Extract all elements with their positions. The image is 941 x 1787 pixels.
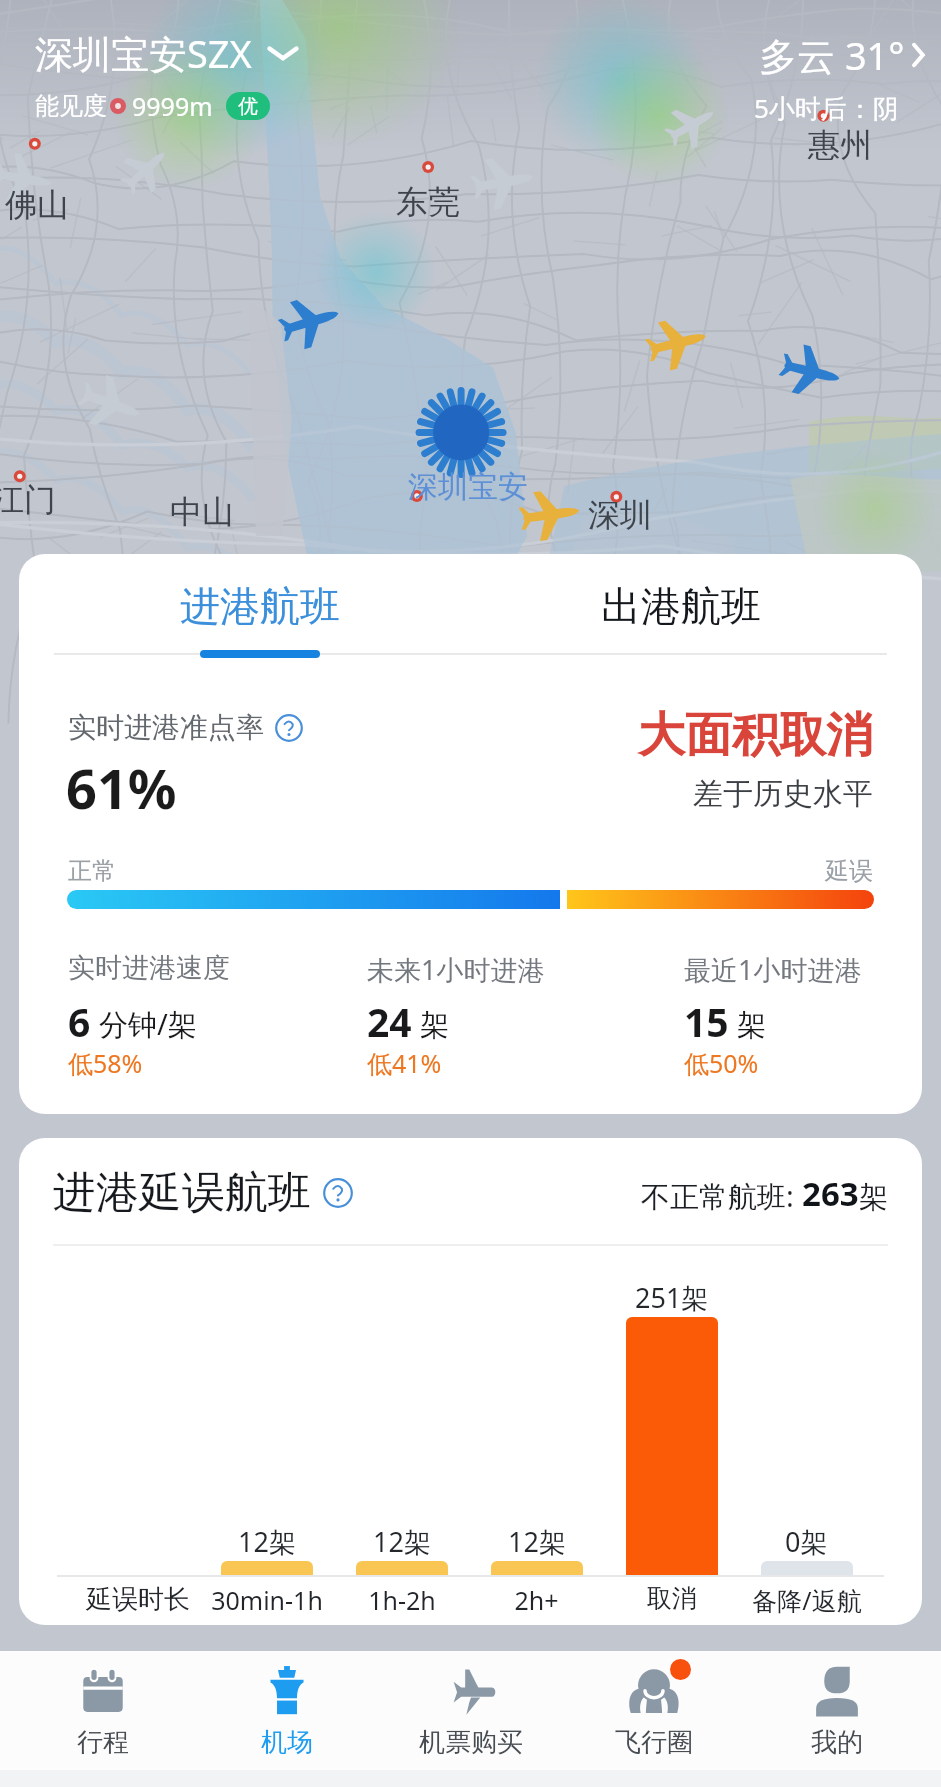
staticText: 出港航班: [601, 581, 761, 631]
staticText: 架: [859, 1179, 888, 1216]
staticText: 251架: [635, 1279, 709, 1316]
button[interactable]: 出港航班: [470, 554, 891, 658]
staticText: 正常: [68, 856, 116, 886]
staticText: 备降/返航: [752, 1583, 862, 1617]
button[interactable]: 飞行圈: [562, 1651, 745, 1759]
button[interactable]: 我的: [745, 1651, 928, 1759]
staticText: 深圳宝安SZX: [35, 27, 252, 79]
staticText: 优: [238, 94, 258, 119]
staticText: 5小时后：阴: [754, 90, 899, 126]
staticText: 15: [684, 995, 729, 1048]
staticText: 未来1小时进港: [367, 951, 545, 988]
button[interactable]: 进港航班: [50, 554, 470, 658]
staticText: 实时进港准点率: [68, 710, 264, 745]
staticText: 多云 31°: [759, 29, 905, 81]
staticText: 架: [420, 1007, 449, 1044]
staticText: 263: [802, 1171, 859, 1216]
button[interactable]: 机场: [195, 1651, 379, 1759]
staticText: 低50%: [684, 1046, 759, 1080]
staticText: 江门: [0, 480, 56, 520]
staticText: 0架: [785, 1523, 828, 1560]
staticText: 进港航班: [180, 581, 340, 631]
button[interactable]: 行程: [11, 1651, 195, 1759]
staticText: 61%: [66, 751, 177, 825]
staticText: 不正常航班:: [641, 1176, 802, 1216]
button[interactable]: 深圳宝安SZX: [35, 27, 299, 123]
staticText: 深圳宝安: [408, 468, 528, 506]
staticText: 低41%: [367, 1046, 442, 1080]
staticText: 9999m: [132, 89, 213, 123]
staticText: 2h+: [514, 1583, 559, 1617]
staticText: 东莞: [396, 182, 460, 222]
staticText: 6: [68, 995, 91, 1048]
staticText: 飞行圈: [615, 1726, 693, 1759]
staticText: 中山: [170, 492, 234, 532]
staticText: 取消: [647, 1583, 697, 1614]
staticText: 大面积取消: [638, 706, 873, 765]
staticText: 我的: [811, 1726, 863, 1759]
button[interactable]: 多云 31°: [759, 29, 926, 126]
staticText: 12架: [508, 1523, 566, 1560]
staticText: 12架: [238, 1523, 296, 1560]
staticText: 进港延误航班: [53, 1166, 311, 1220]
staticText: 24: [367, 995, 412, 1048]
staticText: 惠州: [808, 125, 872, 165]
staticText: 12架: [373, 1523, 431, 1560]
staticText: 佛山: [5, 185, 69, 225]
staticText: 深圳: [588, 495, 652, 535]
staticText: 行程: [77, 1726, 129, 1759]
staticText: 实时进港速度: [68, 951, 230, 985]
staticText: 延误时长: [86, 1583, 190, 1616]
button[interactable]: 机票购买: [379, 1651, 562, 1759]
staticText: 能见度: [35, 91, 107, 121]
staticText: 延误: [825, 856, 873, 886]
staticText: 1h-2h: [368, 1583, 436, 1617]
staticText: 分钟/架: [99, 1004, 197, 1044]
staticText: 差于历史水平: [693, 775, 873, 813]
staticText: 低58%: [68, 1046, 143, 1080]
staticText: 机场: [261, 1726, 313, 1759]
staticText: 机票购买: [419, 1726, 523, 1759]
staticText: 架: [737, 1007, 766, 1044]
staticText: 最近1小时进港: [684, 951, 862, 988]
staticText: 30min-1h: [211, 1583, 323, 1617]
